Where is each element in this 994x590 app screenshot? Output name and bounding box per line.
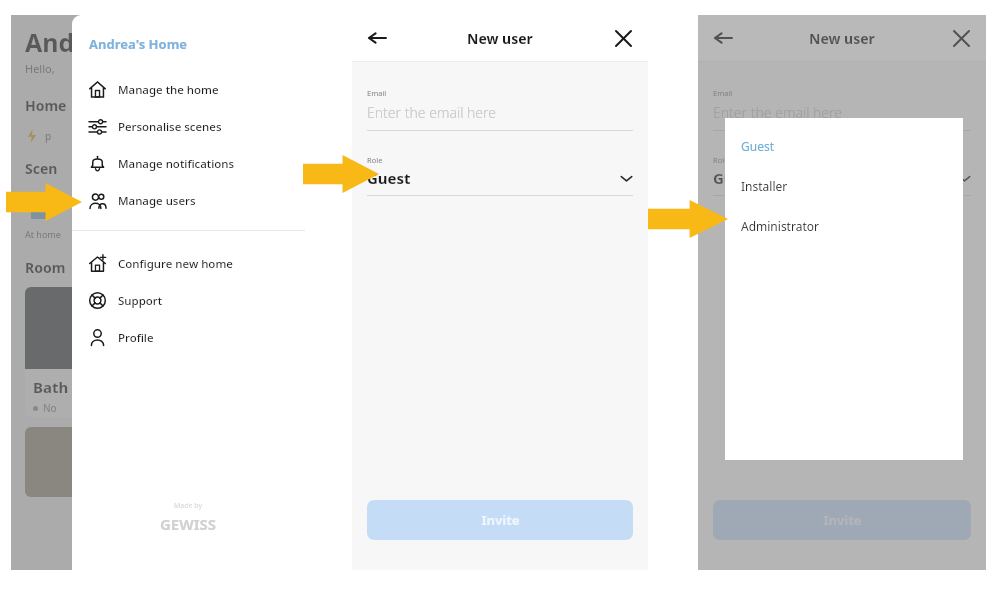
staticText: No [43,401,57,415]
staticText: Guest [713,168,958,188]
staticText: Invite [481,511,520,529]
button[interactable]: Manage notifications [72,145,305,182]
staticText: Manage notifications [118,156,235,172]
staticText: Manage users [118,193,196,209]
button[interactable]: Role [367,155,633,196]
button[interactable]: Profile [72,319,305,356]
button[interactable]: Manage the home [72,71,305,108]
staticText: Profile [118,330,154,346]
staticText: Role [367,155,383,165]
staticText: p [45,129,52,143]
button[interactable]: Invite [367,500,633,540]
staticText: Room [25,258,66,277]
staticText: Bath [33,377,69,397]
button[interactable]: Administrator [725,206,963,246]
staticText: Configure new home [118,256,233,272]
staticText: Andrea's Home [89,35,188,53]
button[interactable]: Close [946,23,976,53]
staticText: Enter the email here [713,103,843,122]
staticText: Guest [741,138,775,154]
staticText: Email [713,88,733,98]
staticText: Enter the email here [367,103,497,122]
button[interactable]: Installer [725,166,963,206]
staticText: Invite [823,511,862,529]
staticText: Hello, [25,61,55,76]
button[interactable]: Personalise scenes [72,108,305,145]
button[interactable]: Configure new home [72,245,305,282]
staticText: Administrator [741,218,819,234]
staticText: Manage the home [118,82,219,98]
button[interactable]: Guest [725,126,963,166]
staticText: Guest [367,168,620,188]
staticText: Scen [25,159,58,178]
staticText: Support [118,293,163,309]
staticText: Installer [741,178,788,194]
staticText: Home [25,96,67,115]
button[interactable]: Close [608,23,638,53]
staticText: Personalise scenes [118,119,222,135]
button[interactable]: Back [362,23,392,53]
staticText: At home [25,228,61,240]
staticText: New user [809,29,875,48]
button[interactable]: Back [708,23,738,53]
staticText: GEWISS [160,514,217,534]
staticText: And [25,25,75,59]
staticText: Role [713,155,729,165]
button[interactable]: Role [713,155,971,196]
button[interactable]: Support [72,282,305,319]
button[interactable]: Manage users [72,182,305,219]
staticText: Email [367,88,387,98]
staticText: Made by [174,501,203,511]
staticText: New user [467,29,533,48]
